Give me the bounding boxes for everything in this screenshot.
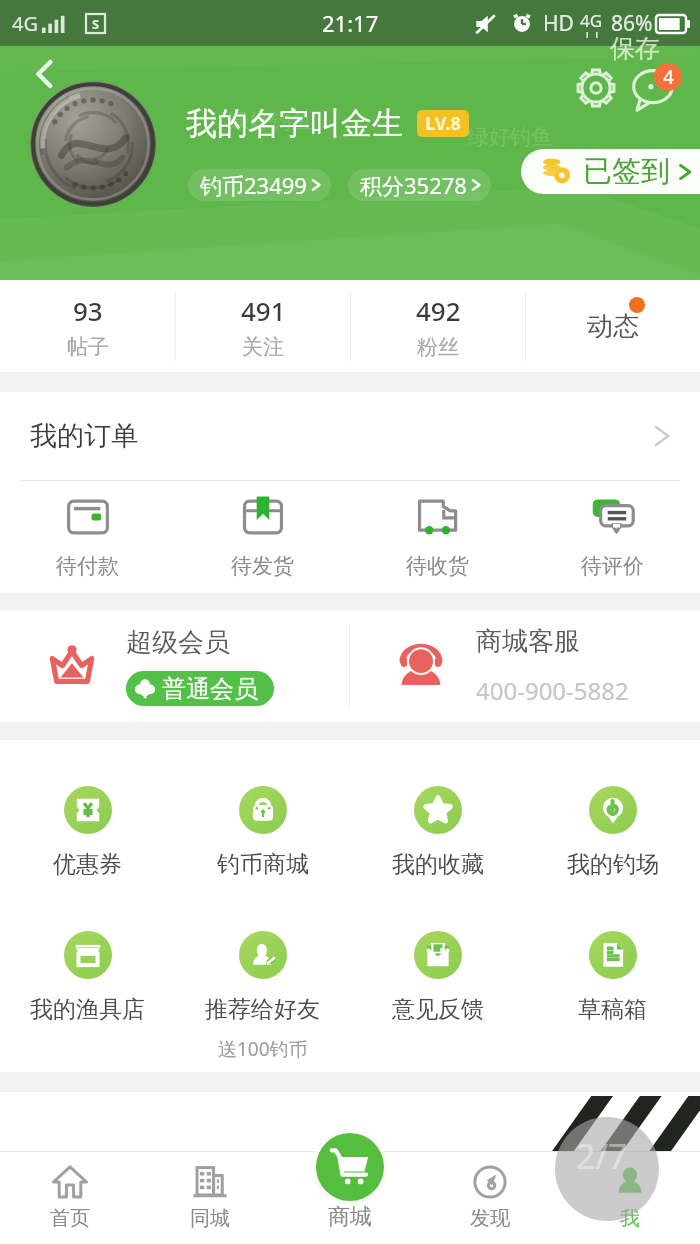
button[interactable]: 草稿箱 xyxy=(525,931,700,1024)
staticText: 草稿箱 xyxy=(578,995,647,1024)
button[interactable]: 首页 xyxy=(0,1151,140,1244)
button[interactable]: 我的收藏 xyxy=(350,786,525,879)
staticText: 93 xyxy=(73,293,103,328)
staticText: 待发货 xyxy=(231,553,294,579)
staticText: 491 xyxy=(241,293,286,328)
button[interactable]: 优惠券 xyxy=(0,786,175,879)
button[interactable]: 推荐给好友 xyxy=(175,931,350,1062)
staticText: 关注 xyxy=(242,334,284,360)
staticText: 发现 xyxy=(470,1206,510,1231)
staticText: 待付款 xyxy=(56,553,119,579)
staticText: 钓币23499 xyxy=(200,170,307,200)
button[interactable]: Settings xyxy=(577,69,615,107)
button[interactable]: Back xyxy=(22,50,70,98)
staticText: 商城客服 xyxy=(476,625,580,658)
staticText: 我的收藏 xyxy=(392,850,484,879)
button[interactable]: 93 xyxy=(0,280,175,372)
staticText: 粉丝 xyxy=(417,334,459,360)
button[interactable]: 发现 xyxy=(420,1151,560,1244)
staticText: 钓币商城 xyxy=(217,850,309,879)
button[interactable]: 492 xyxy=(351,280,525,372)
button[interactable]: 意见反馈 xyxy=(350,931,525,1024)
staticText: 我 xyxy=(620,1206,640,1231)
staticText: 我的渔具店 xyxy=(30,995,145,1024)
staticText: 4G xyxy=(12,10,38,37)
staticText: HD xyxy=(543,9,574,38)
staticText: 优惠券 xyxy=(53,850,122,879)
staticText: 待评价 xyxy=(581,553,644,579)
button[interactable]: 积分35278 xyxy=(348,169,491,201)
button[interactable]: 已签到 xyxy=(521,149,700,194)
button[interactable]: 待发货 xyxy=(175,481,350,593)
staticText: 意见反馈 xyxy=(392,995,484,1024)
staticText: 积分35278 xyxy=(360,170,467,200)
staticText: 我的钓场 xyxy=(567,850,659,879)
button[interactable]: 待评价 xyxy=(525,481,700,593)
staticText: 推荐给好友 xyxy=(205,995,320,1024)
staticText: 首页 xyxy=(50,1206,90,1231)
button[interactable]: 商城客服 xyxy=(350,610,700,722)
button[interactable]: 超级会员 xyxy=(0,610,349,722)
button[interactable]: 钓币23499 xyxy=(188,169,331,201)
staticText: 普通会员 xyxy=(162,674,258,704)
staticText: 我的名字叫金生 xyxy=(186,104,403,143)
staticText: 86% xyxy=(611,9,653,38)
staticText: 400-900-5882 xyxy=(476,674,629,707)
button[interactable]: 动态 xyxy=(526,280,700,372)
button[interactable]: Shop xyxy=(316,1133,384,1201)
staticText: 超级会员 xyxy=(126,626,230,659)
button[interactable]: 钓币商城 xyxy=(175,786,350,879)
button[interactable]: Avatar xyxy=(30,81,156,207)
staticText: 绿好钓鱼 xyxy=(228,108,312,134)
button[interactable]: 我的订单 xyxy=(0,392,700,480)
button[interactable]: Messages xyxy=(632,69,674,111)
button[interactable]: 我的钓场 xyxy=(525,786,700,879)
staticText: 保存 xyxy=(610,33,660,64)
staticText: 动态 xyxy=(587,310,639,343)
staticText: 2/7 xyxy=(576,1133,628,1179)
staticText: 同城 xyxy=(190,1206,230,1231)
staticText: S xyxy=(92,15,100,33)
staticText: 4G xyxy=(580,9,603,32)
button[interactable]: 同城 xyxy=(140,1151,280,1244)
button[interactable]: 待收货 xyxy=(350,481,525,593)
staticText: 绿好钓鱼 xyxy=(468,124,552,150)
staticText: 帖子 xyxy=(67,334,109,360)
staticText: 我的订单 xyxy=(30,419,138,453)
button[interactable]: 491 xyxy=(176,280,350,372)
staticText: 492 xyxy=(416,293,461,328)
staticText: 已签到 xyxy=(583,153,670,190)
staticText: 4 xyxy=(663,64,674,90)
button[interactable]: 我的渔具店 xyxy=(0,931,175,1024)
button[interactable]: 我 xyxy=(560,1151,700,1244)
staticText: 商城 xyxy=(328,1203,372,1231)
staticText: 21:17 xyxy=(322,8,379,38)
staticText: 待收货 xyxy=(406,553,469,579)
button[interactable]: 待付款 xyxy=(0,481,175,593)
staticText: 送100钓币 xyxy=(218,1036,308,1062)
button[interactable]: 商城 xyxy=(280,1151,420,1244)
staticText: LV.8 xyxy=(425,111,461,136)
